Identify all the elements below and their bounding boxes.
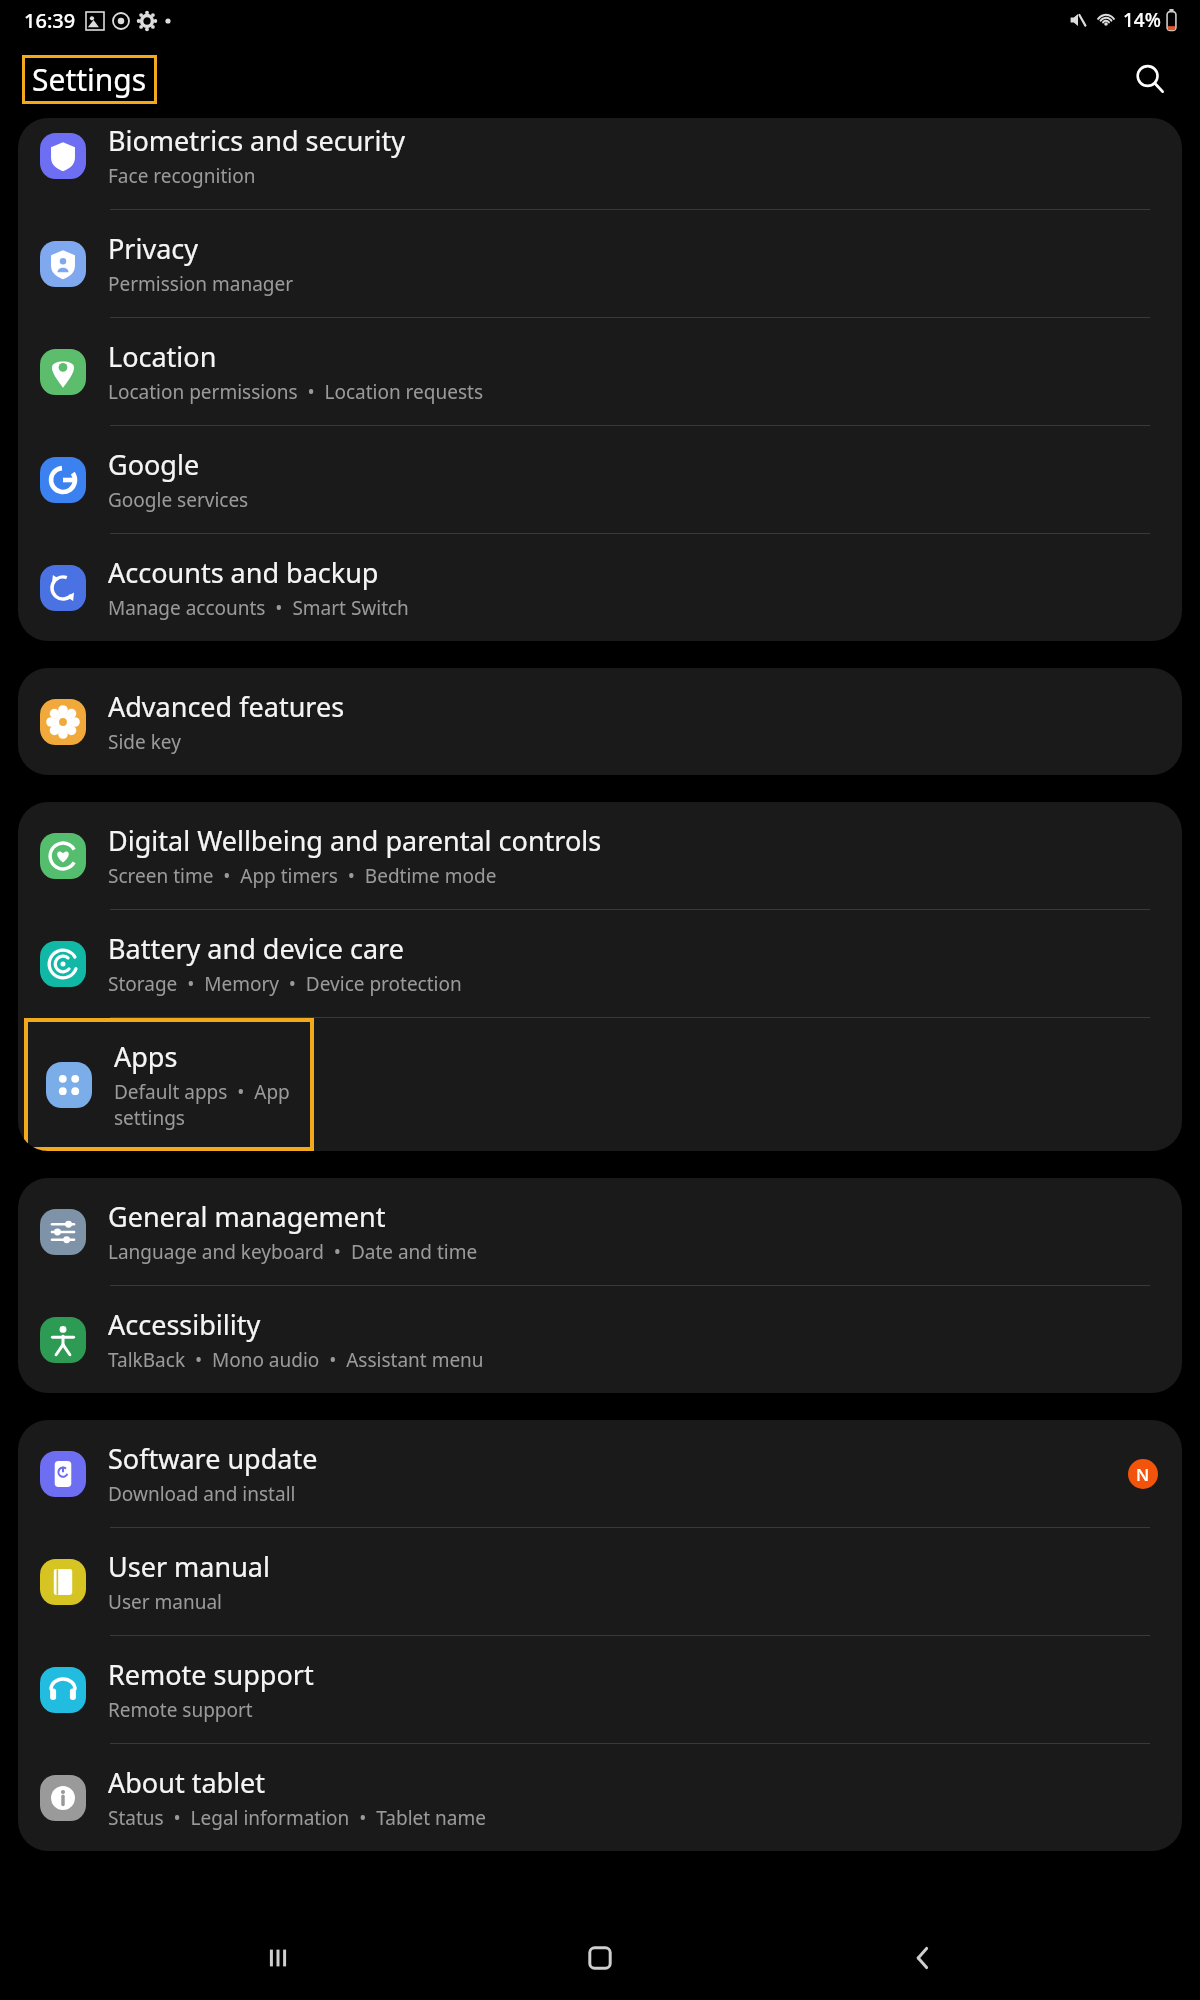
staticText: User manual bbox=[108, 1589, 222, 1615]
staticText: 14% bbox=[1123, 7, 1161, 33]
button[interactable]: Home bbox=[555, 1916, 645, 2000]
staticText: Apps bbox=[114, 1038, 178, 1075]
staticText: Location bbox=[108, 338, 217, 375]
button[interactable]: Settings bbox=[32, 59, 147, 100]
button[interactable]: Back bbox=[878, 1916, 968, 2000]
staticText: Accounts and backup bbox=[108, 554, 379, 591]
button[interactable]: Search bbox=[1122, 51, 1178, 107]
staticText: Language and keyboard • Date and time bbox=[108, 1239, 478, 1265]
button[interactable]: About tablet bbox=[40, 1764, 1158, 1831]
button[interactable]: Recent apps bbox=[233, 1916, 323, 2000]
staticText: Settings bbox=[32, 59, 147, 100]
staticText: Software update bbox=[108, 1440, 318, 1477]
button[interactable]: Remote support bbox=[40, 1656, 1158, 1723]
staticText: Side key bbox=[108, 729, 181, 755]
button[interactable]: Privacy bbox=[40, 230, 1158, 297]
staticText: Battery and device care bbox=[108, 930, 404, 967]
staticText: User manual bbox=[108, 1548, 270, 1585]
staticText: Privacy bbox=[108, 230, 199, 267]
staticText: Face recognition bbox=[108, 163, 256, 189]
button[interactable]: Digital Wellbeing and parental controls bbox=[40, 822, 1158, 889]
staticText: About tablet bbox=[108, 1764, 266, 1801]
staticText: General management bbox=[108, 1198, 386, 1235]
staticText: Download and install bbox=[108, 1481, 296, 1507]
staticText: Remote support bbox=[108, 1656, 314, 1693]
button[interactable]: Accessibility bbox=[40, 1306, 1158, 1373]
button[interactable]: Advanced features bbox=[40, 688, 1158, 755]
staticText: Screen time • App timers • Bedtime mode bbox=[108, 863, 497, 889]
staticText: 16:39 bbox=[24, 7, 76, 34]
staticText: Location permissions • Location requests bbox=[108, 379, 483, 405]
button[interactable]: Accounts and backup bbox=[40, 554, 1158, 621]
button[interactable]: General management bbox=[40, 1198, 1158, 1265]
staticText: Remote support bbox=[108, 1697, 253, 1723]
staticText: Google services bbox=[108, 487, 249, 513]
staticText: TalkBack • Mono audio • Assistant menu bbox=[108, 1347, 484, 1373]
staticText: Default apps • App settings bbox=[114, 1079, 290, 1131]
staticText: Accessibility bbox=[108, 1306, 261, 1343]
button[interactable]: Apps bbox=[46, 1038, 290, 1131]
staticText: Status • Legal information • Tablet name bbox=[108, 1805, 486, 1831]
staticText: Storage • Memory • Device protection bbox=[108, 971, 462, 997]
staticText: Google bbox=[108, 446, 200, 483]
staticText: Advanced features bbox=[108, 688, 345, 725]
button[interactable]: Biometrics and security bbox=[40, 122, 1158, 189]
staticText: Biometrics and security bbox=[108, 122, 405, 159]
button[interactable]: User manual bbox=[40, 1548, 1158, 1615]
staticText: Permission manager bbox=[108, 271, 294, 297]
staticText: N bbox=[1136, 1463, 1150, 1486]
button[interactable]: Location bbox=[40, 338, 1158, 405]
button[interactable]: Battery and device care bbox=[40, 930, 1158, 997]
button[interactable]: Google bbox=[40, 446, 1158, 513]
staticText: Digital Wellbeing and parental controls bbox=[108, 822, 602, 859]
staticText: Manage accounts • Smart Switch bbox=[108, 595, 409, 621]
button[interactable]: Software update bbox=[40, 1440, 1158, 1507]
